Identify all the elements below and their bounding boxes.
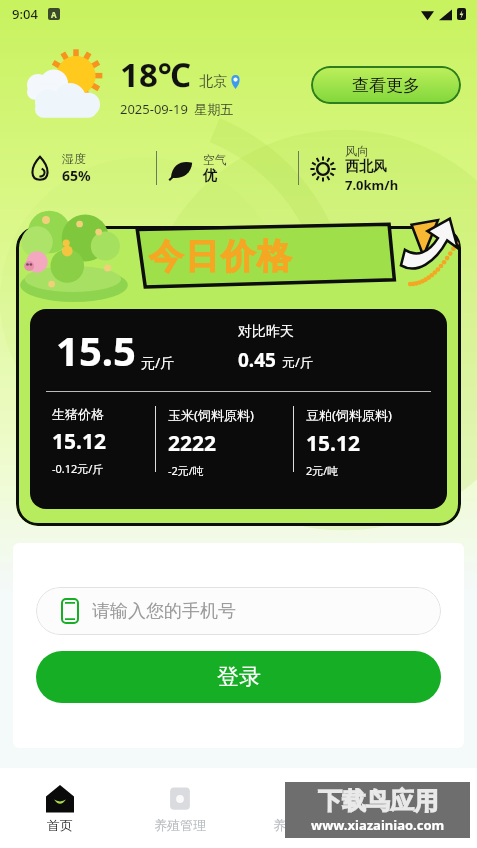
staticText: A	[51, 9, 57, 20]
staticText: -2元/吨	[168, 463, 204, 478]
staticText: 湿度	[62, 151, 86, 166]
staticText: 2222	[168, 429, 217, 458]
staticText: 空气	[203, 152, 227, 167]
button[interactable]: 养殖工具	[239, 768, 358, 848]
button[interactable]: 我的	[358, 768, 477, 848]
staticText: 18℃	[120, 52, 191, 97]
staticText: 西北风	[345, 158, 387, 176]
button[interactable]: 养殖管理	[120, 768, 239, 848]
staticText: 对比昨天	[238, 323, 294, 341]
staticText: 15.5	[56, 323, 136, 377]
staticText: 15.12	[306, 429, 360, 458]
staticText: 登录	[217, 663, 261, 691]
button[interactable]: 首页	[0, 768, 120, 848]
staticText: 养殖管理	[154, 817, 206, 833]
button[interactable]: 请输入您的手机号	[36, 587, 441, 635]
staticText: 15.12	[52, 427, 106, 456]
staticText: 请输入您的手机号	[92, 600, 236, 623]
staticText: 今日价格	[148, 235, 292, 278]
staticText: 豆粕(饲料原料)	[306, 406, 392, 424]
staticText: 元/斤	[141, 353, 175, 372]
staticText: 7.0km/h	[345, 176, 399, 194]
staticText: 北京	[199, 73, 227, 91]
staticText: 玉米(饲料原料)	[168, 406, 254, 424]
staticText: -0.12元/斤	[52, 461, 104, 476]
button[interactable]: 查看更多	[311, 66, 461, 104]
staticText: 2元/吨	[306, 463, 339, 478]
staticText: 我的	[405, 817, 431, 833]
staticText: 首页	[47, 817, 73, 833]
staticText: 下载鸟应用	[318, 786, 438, 816]
staticText: 2025-09-19 星期五	[120, 100, 234, 118]
staticText: 查看更多	[352, 75, 420, 96]
staticText: 风向	[345, 143, 369, 158]
staticText: 65%	[62, 166, 91, 185]
staticText: 元/斤	[282, 353, 313, 371]
staticText: 养殖工具	[273, 817, 325, 833]
staticText: 生猪价格	[52, 406, 104, 422]
staticText: 优	[203, 167, 217, 185]
button[interactable]: 登录	[36, 651, 441, 703]
staticText: www.xiazainiao.com	[311, 816, 445, 834]
staticText: 9:04	[12, 5, 38, 23]
staticText: 0.45	[238, 347, 276, 373]
